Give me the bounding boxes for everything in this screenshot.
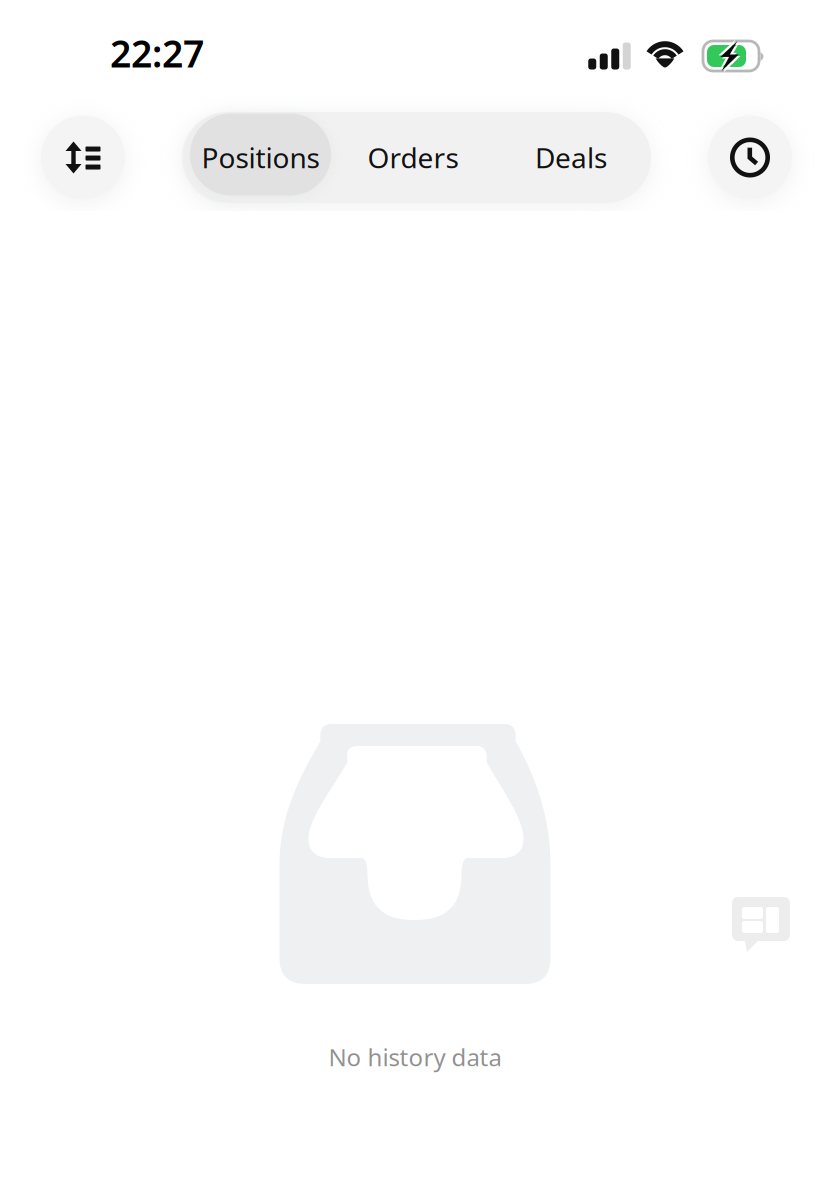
button[interactable]: Deals: [495, 116, 647, 198]
staticText: 22:27: [110, 28, 204, 78]
staticText: No history data: [328, 1041, 501, 1073]
button[interactable]: Positions: [190, 116, 331, 198]
button[interactable]: Sort: [41, 115, 125, 199]
staticText: Orders: [367, 139, 458, 176]
button[interactable]: Orders: [331, 116, 495, 198]
button[interactable]: Support chat: [714, 879, 810, 971]
button[interactable]: History: [708, 115, 792, 199]
staticText: Deals: [535, 139, 607, 176]
staticText: Positions: [201, 139, 319, 176]
